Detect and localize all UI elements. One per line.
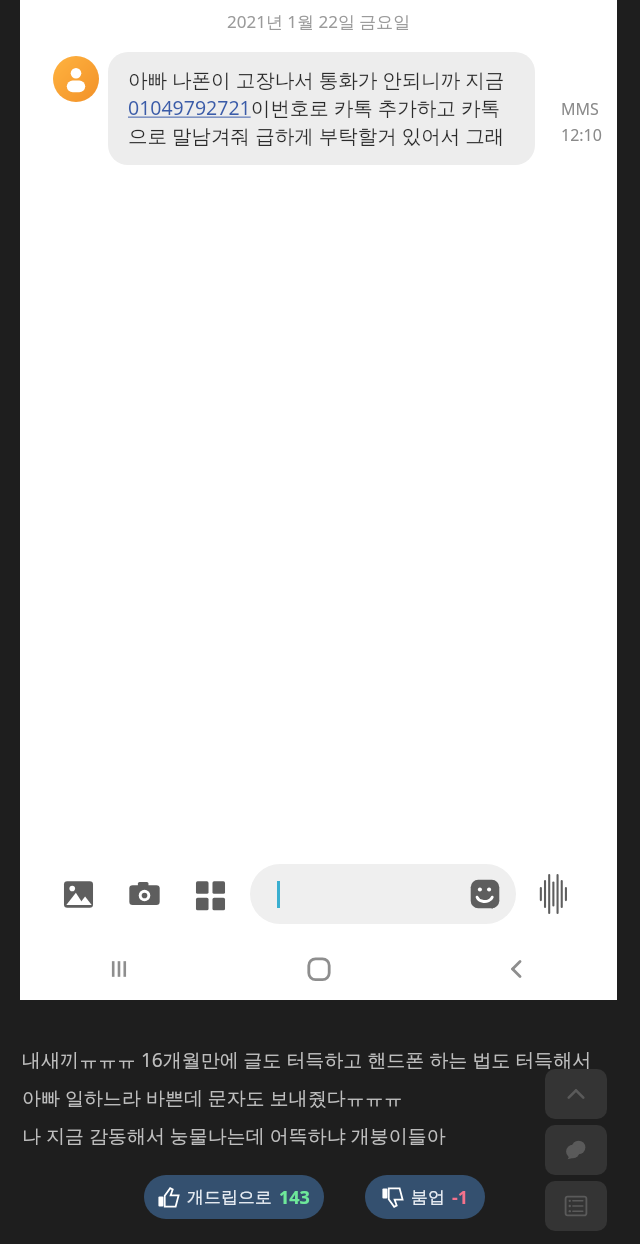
- button[interactable]: More apps: [188, 872, 232, 916]
- staticText: 개드립으로: [187, 1187, 272, 1208]
- button[interactable]: Scroll to top: [545, 1069, 607, 1119]
- button[interactable]: Comments: [545, 1125, 607, 1175]
- staticText: -1: [452, 1185, 469, 1210]
- button[interactable]: List: [545, 1181, 607, 1231]
- button[interactable]: Voice message: [534, 875, 572, 913]
- button[interactable]: Stickers: [468, 877, 502, 911]
- button[interactable]: Camera: [122, 872, 166, 916]
- staticText: 아빠 일하느라 바쁜데 문자도 보내줬다ㅠㅠㅠ: [22, 1085, 403, 1111]
- staticText: 붐업: [411, 1187, 445, 1208]
- staticText: 나 지금 감동해서 눙물나는데 어뜩하냐 개붕이들아: [22, 1123, 446, 1149]
- button[interactable]: 붐업: [365, 1175, 485, 1219]
- staticText: 2021년 1월 22일 금요일: [227, 10, 411, 33]
- button[interactable]: Recents: [20, 940, 219, 998]
- button[interactable]: Attach image: [56, 872, 100, 916]
- staticText: 12:10: [561, 124, 602, 146]
- button[interactable]: Back: [418, 940, 617, 998]
- button[interactable]: 아빠 나폰이 고장나서 통화가 안되니까 지금 01049792721이번호로 …: [108, 52, 535, 165]
- button[interactable]: Home: [219, 940, 418, 998]
- button[interactable]: Contact avatar: [53, 56, 99, 102]
- staticText: 아빠 나폰이 고장나서 통화가 안되니까 지금 01049792721이번호로 …: [128, 66, 517, 149]
- staticText: 143: [279, 1185, 310, 1210]
- button[interactable]: Stickers: [250, 864, 516, 924]
- staticText: MMS: [561, 98, 599, 120]
- button[interactable]: 개드립으로: [144, 1175, 324, 1219]
- staticText: 내새끼ㅠㅠㅠ 16개월만에 글도 터득하고 핸드폰 하는 법도 터득해서: [22, 1047, 592, 1073]
